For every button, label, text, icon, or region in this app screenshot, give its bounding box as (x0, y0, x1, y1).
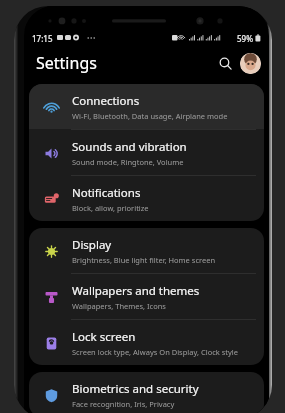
staticText: Biometrics and security (72, 381, 199, 397)
button[interactable]: Wallpapers and themes (29, 274, 264, 319)
staticText: Face recognition, Iris, Privacy (72, 399, 175, 409)
staticText: Block, allow, prioritize (72, 203, 149, 213)
button[interactable]: Profile (240, 53, 261, 74)
staticText: Wallpapers and themes (72, 283, 200, 299)
staticText: Lock screen (72, 329, 136, 345)
staticText: Display (72, 237, 112, 253)
staticText: 17:15 (32, 33, 53, 44)
staticText: Notifications (72, 185, 141, 201)
staticText: Screen lock type, Always On Display, Clo… (72, 347, 239, 357)
staticText: Sounds and vibration (72, 139, 187, 155)
staticText: Sound mode, Ringtone, Volume (72, 157, 184, 167)
button[interactable]: Search (213, 51, 237, 75)
button[interactable]: Connections (29, 84, 264, 129)
button[interactable]: Lock screen (29, 320, 264, 365)
staticText: Brightness, Blue light filter, Home scre… (72, 255, 216, 265)
staticText: 59% (237, 33, 253, 44)
button[interactable]: Sounds and vibration (29, 130, 264, 175)
button[interactable]: Notifications (29, 176, 264, 221)
staticText: Settings (36, 52, 97, 74)
button[interactable]: Biometrics and security (29, 372, 264, 413)
staticText: Wallpapers, Themes, Icons (72, 301, 166, 311)
staticText: Connections (72, 93, 140, 109)
staticText: Wi-Fi, Bluetooth, Data usage, Airplane m… (72, 111, 228, 121)
button[interactable]: Display (29, 228, 264, 273)
